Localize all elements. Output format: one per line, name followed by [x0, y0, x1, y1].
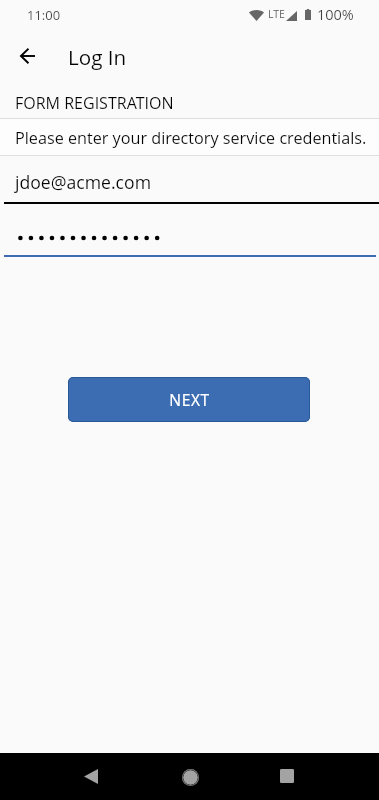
staticText: Log In [68, 43, 127, 71]
button[interactable]: Home [167, 754, 213, 800]
button[interactable]: Back [68, 753, 114, 799]
staticText: 11:00 [27, 6, 61, 24]
staticText: jdoe@acme.com [15, 170, 151, 194]
staticText: Please enter your directory service cred… [15, 127, 367, 149]
staticText: NEXT [169, 389, 210, 410]
staticText: 100% [317, 5, 354, 25]
button[interactable]: Recent apps [264, 753, 310, 799]
staticText: FORM REGISTRATION [15, 92, 174, 114]
button[interactable]: Back [11, 40, 43, 72]
button[interactable]: NEXT [68, 377, 310, 422]
staticText: LTE [268, 7, 285, 21]
